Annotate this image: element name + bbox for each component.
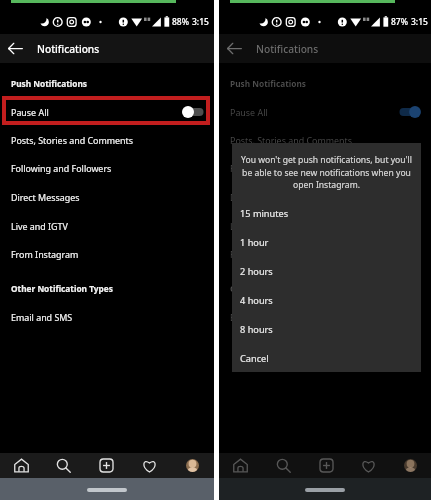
button[interactable]: Cancel xyxy=(232,344,421,372)
staticText: Notifications xyxy=(256,42,319,56)
staticText: 15 minutes xyxy=(240,207,289,220)
staticText: Other Notification Types xyxy=(11,283,113,294)
staticText: From Instagram xyxy=(230,248,298,260)
staticText: 87% xyxy=(391,16,408,28)
staticText: From Instagram xyxy=(11,248,79,260)
button[interactable]: Profile xyxy=(389,453,431,478)
staticText: Pause All xyxy=(11,106,49,118)
staticText: 88% xyxy=(172,16,189,28)
button[interactable]: Activity xyxy=(128,453,171,478)
button[interactable]: 1 hour xyxy=(232,228,421,257)
button[interactable]: Direct Messages xyxy=(219,182,431,211)
staticText: Other Notification Types xyxy=(230,283,332,294)
button[interactable]: Activity xyxy=(347,453,389,478)
staticText: 3:15 xyxy=(411,16,428,28)
staticText: Direct Messages xyxy=(11,191,80,203)
button[interactable]: 15 minutes xyxy=(232,199,421,228)
button[interactable]: Pause All xyxy=(219,97,431,126)
staticText: Pause All xyxy=(230,106,268,118)
staticText: Notifications xyxy=(37,42,100,56)
button[interactable]: 8 hours xyxy=(232,315,421,344)
button[interactable]: Live and IGTV xyxy=(0,211,214,240)
staticText: You won't get push notifications, but yo… xyxy=(241,154,412,190)
staticText: 2 hours xyxy=(240,265,273,278)
staticText: Push Notifications xyxy=(11,78,88,89)
button[interactable]: Following and Followers xyxy=(219,153,431,182)
button[interactable]: Posts, Stories and Comments xyxy=(0,125,214,154)
staticText: 8 hours xyxy=(240,323,273,336)
staticText: Push Notifications xyxy=(230,78,307,89)
staticText: Posts, Stories and Comments xyxy=(230,134,353,146)
button[interactable]: Back xyxy=(0,34,31,63)
staticText: Email and SMS xyxy=(230,311,292,323)
button[interactable]: Profile xyxy=(171,453,214,478)
button[interactable]: From Instagram xyxy=(0,239,214,268)
button[interactable]: Email and SMS xyxy=(219,302,431,331)
button[interactable]: Home xyxy=(219,453,262,478)
button[interactable]: Posts, Stories and Comments xyxy=(219,125,431,154)
button[interactable]: Pause All xyxy=(0,97,214,126)
staticText: 1 hour xyxy=(240,236,269,249)
button[interactable]: Email and SMS xyxy=(0,302,214,331)
button[interactable]: New post xyxy=(305,453,347,478)
staticText: 4 hours xyxy=(240,294,273,307)
button[interactable]: 4 hours xyxy=(232,286,421,315)
staticText: Email and SMS xyxy=(11,311,73,323)
button[interactable]: Direct Messages xyxy=(0,182,214,211)
button[interactable]: Search xyxy=(262,453,305,478)
button[interactable]: 2 hours xyxy=(232,257,421,286)
button[interactable]: New post xyxy=(85,453,128,478)
staticText: Following and Followers xyxy=(11,162,112,174)
staticText: Live and IGTV xyxy=(230,220,287,232)
staticText: 3:15 xyxy=(192,16,209,28)
button[interactable]: Following and Followers xyxy=(0,153,214,182)
staticText: Cancel xyxy=(240,352,269,365)
button[interactable]: Home xyxy=(0,453,42,478)
staticText: Direct Messages xyxy=(230,191,299,203)
button[interactable]: Live and IGTV xyxy=(219,211,431,240)
staticText: Following and Followers xyxy=(230,162,331,174)
button[interactable]: From Instagram xyxy=(219,239,431,268)
button[interactable]: Search xyxy=(42,453,85,478)
button[interactable]: Back xyxy=(219,34,250,63)
staticText: Posts, Stories and Comments xyxy=(11,134,134,146)
staticText: Live and IGTV xyxy=(11,220,68,232)
